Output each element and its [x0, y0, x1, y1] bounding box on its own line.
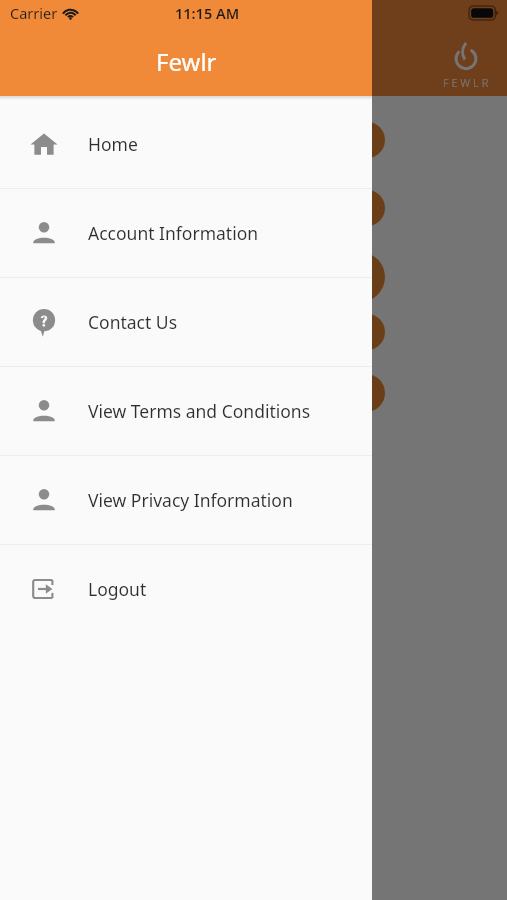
staticText: Carrier [10, 3, 58, 23]
staticText: View Privacy Information [88, 488, 293, 512]
staticText: Home [88, 132, 138, 156]
staticText: 11:15 AM [175, 3, 240, 23]
button[interactable]: Contact Us [0, 278, 372, 366]
staticText: Account Information [88, 221, 259, 245]
staticText: Fewlr [156, 45, 217, 78]
staticText: F E W L R [443, 75, 489, 90]
staticText: View Terms and Conditions [88, 399, 311, 423]
button[interactable]: Account Information [0, 189, 372, 277]
button[interactable]: View Privacy Information [0, 456, 372, 544]
button[interactable]: Logout [0, 545, 372, 633]
staticText: 555 456244 [56, 496, 203, 533]
button[interactable]: Home [0, 100, 372, 188]
button[interactable]: View Terms and Conditions [0, 367, 372, 455]
staticText: Logout [88, 577, 147, 601]
staticText: Contact Us [88, 310, 178, 334]
